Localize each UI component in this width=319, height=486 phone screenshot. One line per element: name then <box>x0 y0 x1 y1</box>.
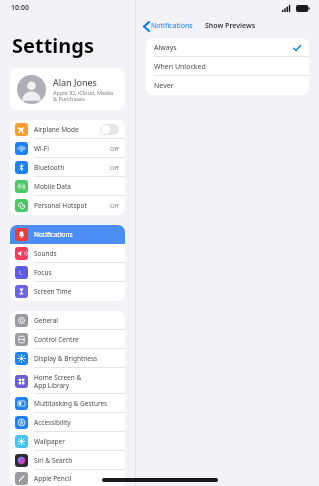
button[interactable]: Always <box>146 38 309 57</box>
button[interactable]: Sounds <box>10 244 125 263</box>
staticText: Notifications <box>151 21 193 31</box>
staticText: Control Centre <box>34 335 119 344</box>
staticText: When Unlocked <box>154 62 301 72</box>
button[interactable]: Focus <box>10 263 125 282</box>
button[interactable]: Accessibility <box>10 413 125 432</box>
staticText: Off <box>110 164 119 172</box>
staticText: Screen Time <box>34 287 119 296</box>
staticText: Settings <box>12 32 94 59</box>
staticText: Wallpaper <box>34 437 119 446</box>
staticText: 10:00 <box>11 3 29 13</box>
staticText: Display & Brightness <box>34 354 119 363</box>
staticText: Show Previews <box>205 21 256 31</box>
staticText: Off <box>110 202 119 210</box>
staticText: Sounds <box>34 249 119 258</box>
staticText: Focus <box>34 268 119 277</box>
button[interactable]: Mobile Data <box>10 177 125 196</box>
staticText: General <box>34 316 119 325</box>
button[interactable]: Control Centre <box>10 330 125 349</box>
staticText: Notifications <box>34 230 119 239</box>
button[interactable]: Bluetooth <box>10 158 125 177</box>
button[interactable]: General <box>10 311 125 330</box>
staticText: Never <box>154 81 301 91</box>
button[interactable]: Siri & Search <box>10 451 125 470</box>
staticText: Apple Pencil <box>34 474 119 483</box>
staticText: Siri & Search <box>34 456 119 465</box>
button[interactable]: Notifications <box>136 21 197 31</box>
staticText: Off <box>110 145 119 153</box>
button[interactable]: Wi-Fi <box>10 139 125 158</box>
button[interactable]: Screen Time <box>10 282 125 301</box>
button[interactable]: When Unlocked <box>146 57 309 76</box>
button[interactable]: Home Screen & App Library <box>10 368 125 394</box>
staticText: Apple ID, iCloud, Media & Purchases <box>53 89 114 103</box>
button[interactable]: Never <box>146 76 309 95</box>
staticText: Personal Hotspot <box>34 201 110 210</box>
button[interactable]: Apple Pencil <box>10 470 125 486</box>
staticText: Wi-Fi <box>34 144 110 153</box>
staticText: Bluetooth <box>34 163 110 172</box>
staticText: Home Screen & App Library <box>34 373 119 390</box>
staticText: Always <box>154 43 293 53</box>
button[interactable]: Alan Jones <box>10 68 125 110</box>
staticText: Accessibility <box>34 418 119 427</box>
button[interactable]: Display & Brightness <box>10 349 125 368</box>
button[interactable]: Notifications <box>10 225 125 244</box>
staticText: Mobile Data <box>34 182 119 191</box>
staticText: Multitasking & Gestures <box>34 399 119 408</box>
button[interactable]: Wallpaper <box>10 432 125 451</box>
button[interactable]: Personal Hotspot <box>10 196 125 215</box>
staticText: Airplane Mode <box>34 125 100 134</box>
button[interactable]: Multitasking & Gestures <box>10 394 125 413</box>
other: Airplane Mode toggle <box>100 124 119 135</box>
staticText: Alan Jones <box>53 76 97 88</box>
button[interactable]: Airplane Mode <box>10 120 125 139</box>
